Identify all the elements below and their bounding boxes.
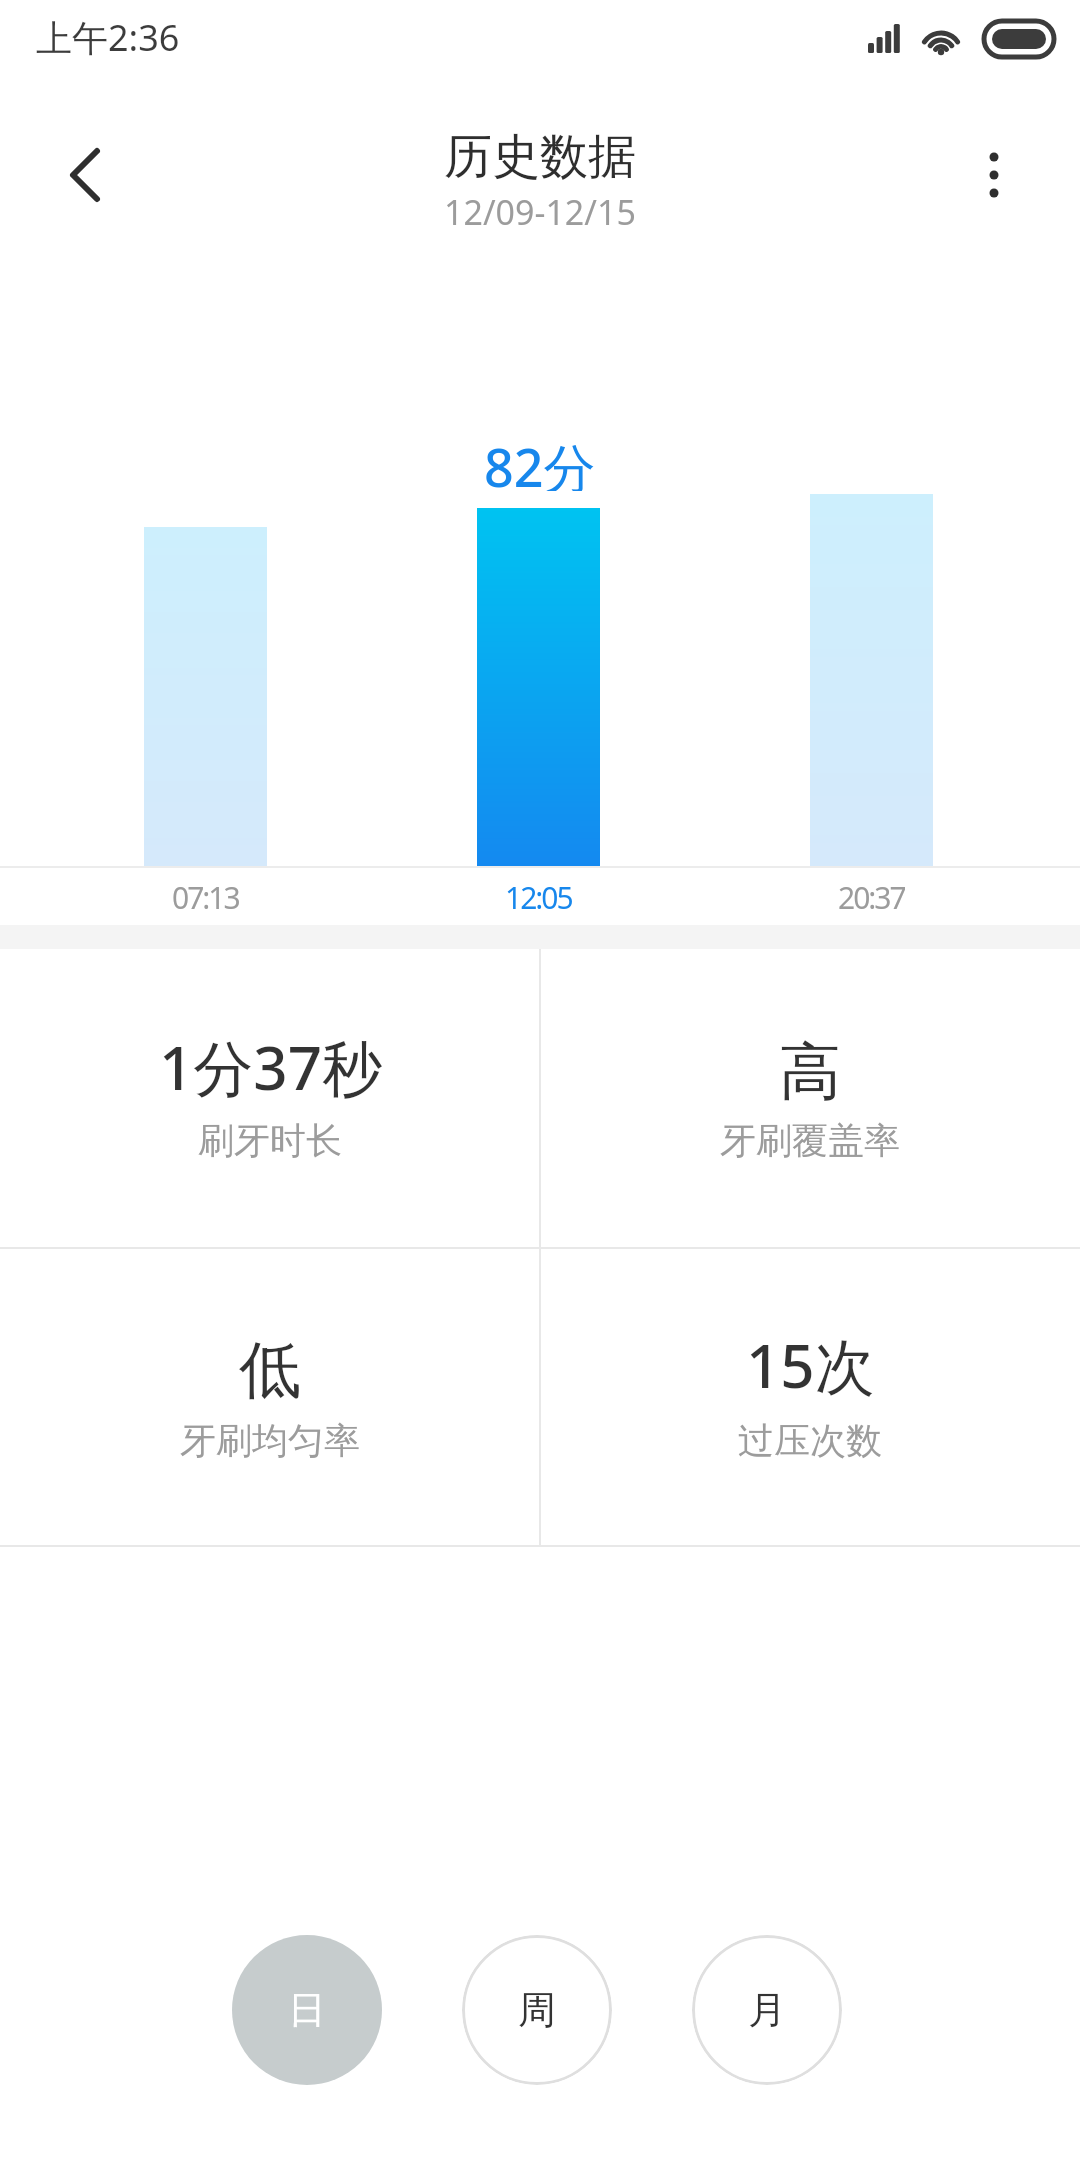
staticText: 07:13 (172, 877, 239, 917)
button[interactable]: 月 (692, 1935, 842, 2085)
staticText: 上午2:36 (36, 13, 180, 62)
staticText: 日 (288, 1986, 326, 2034)
staticText: 82分 (484, 431, 596, 491)
staticText: 高 (779, 1033, 841, 1107)
button[interactable] (540, 949, 1080, 1247)
button[interactable] (0, 1249, 540, 1545)
staticText: 牙刷均匀率 (180, 1418, 360, 1463)
staticText: 刷牙时长 (198, 1118, 342, 1163)
staticText: 12/09-12/15 (444, 189, 636, 235)
staticText: 12:05 (505, 877, 572, 917)
staticText: 月 (748, 1986, 786, 2034)
button[interactable]: 日 (232, 1935, 382, 2085)
staticText: 过压次数 (738, 1418, 882, 1463)
button[interactable] (0, 949, 540, 1247)
staticText: 历史数据 (444, 127, 636, 187)
staticText: 15次 (746, 1324, 875, 1398)
button[interactable]: 周 (462, 1935, 612, 2085)
button[interactable] (40, 140, 120, 220)
button[interactable] (540, 1249, 1080, 1545)
staticText: 周 (518, 1986, 556, 2034)
staticText: 1分37秒 (159, 1026, 382, 1100)
button[interactable] (955, 140, 1035, 220)
staticText: 牙刷覆盖率 (720, 1118, 900, 1163)
staticText: 低 (239, 1331, 301, 1405)
staticText: 20:37 (838, 877, 905, 917)
